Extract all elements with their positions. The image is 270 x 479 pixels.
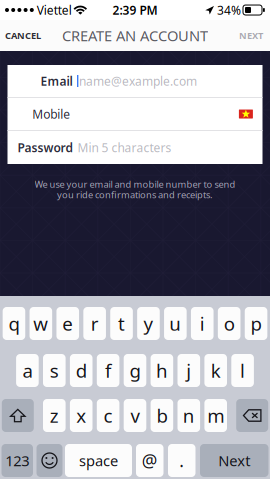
button[interactable]: z xyxy=(43,399,66,432)
button[interactable]: v xyxy=(124,399,146,432)
staticText: e xyxy=(62,311,73,336)
button[interactable]: Email xyxy=(7,65,262,97)
button[interactable]: t xyxy=(110,307,133,340)
staticText: Mobile xyxy=(32,106,70,122)
staticText: c xyxy=(104,403,113,428)
staticText: k xyxy=(211,358,221,383)
staticText: r xyxy=(91,311,99,336)
staticText: m xyxy=(207,403,224,428)
staticText: . xyxy=(179,449,184,472)
staticText: CREATE AN ACCOUNT xyxy=(62,26,208,45)
button[interactable]: k xyxy=(204,354,227,387)
button[interactable]: m xyxy=(204,399,227,432)
button[interactable]: p xyxy=(245,307,267,340)
staticText: s xyxy=(50,358,59,383)
button[interactable]: . xyxy=(168,444,195,477)
staticText: l xyxy=(240,358,245,383)
staticText: you ride confirmations and receipts. xyxy=(57,188,213,201)
staticText: o xyxy=(224,311,235,336)
button[interactable]: CANCEL xyxy=(0,20,46,51)
button[interactable]: Password xyxy=(7,131,262,164)
button[interactable]: i xyxy=(191,307,214,340)
staticText: z xyxy=(50,403,59,428)
button[interactable]: @ xyxy=(136,444,163,477)
staticText: name@example.com xyxy=(79,73,197,89)
button[interactable]: Mobile xyxy=(7,98,262,130)
staticText: b xyxy=(156,403,167,428)
staticText: 34% xyxy=(214,2,241,18)
button[interactable]: l xyxy=(231,354,254,387)
button[interactable]: c xyxy=(97,399,119,432)
button[interactable]: a xyxy=(16,354,39,387)
staticText: 2:39 PM xyxy=(112,2,157,18)
button[interactable]: 123 xyxy=(1,444,33,477)
staticText: w xyxy=(33,311,48,336)
staticText: h xyxy=(156,358,168,383)
staticText: x xyxy=(76,403,86,428)
staticText: v xyxy=(130,403,139,428)
button[interactable]: x xyxy=(70,399,92,432)
button[interactable]: Shift xyxy=(2,399,34,432)
staticText: y xyxy=(143,311,153,336)
button[interactable]: q xyxy=(3,307,25,340)
button[interactable]: j xyxy=(177,354,200,387)
button[interactable]: r xyxy=(83,307,106,340)
button[interactable]: s xyxy=(43,354,66,387)
button[interactable]: n xyxy=(177,399,200,432)
button[interactable]: NEXT xyxy=(232,20,270,51)
staticText: u xyxy=(169,311,181,336)
button[interactable]: w xyxy=(30,307,52,340)
staticText: Email xyxy=(40,73,72,89)
staticText: Password xyxy=(17,139,73,155)
staticText: space xyxy=(79,451,118,470)
staticText: Min 5 characters xyxy=(77,139,171,155)
button[interactable]: Backspace xyxy=(236,399,268,432)
staticText: a xyxy=(22,358,32,383)
staticText: @ xyxy=(142,449,158,472)
button[interactable]: h xyxy=(151,354,173,387)
button[interactable]: d xyxy=(70,354,92,387)
button[interactable]: o xyxy=(218,307,240,340)
staticText: f xyxy=(105,358,111,383)
button[interactable]: Next xyxy=(200,444,268,477)
button[interactable]: g xyxy=(124,354,146,387)
button[interactable]: Emoji xyxy=(36,444,62,477)
staticText: p xyxy=(251,311,262,336)
staticText: NEXT xyxy=(239,29,263,42)
staticText: g xyxy=(129,358,140,383)
staticText: 123 xyxy=(5,451,29,470)
staticText: d xyxy=(76,358,87,383)
button[interactable]: e xyxy=(56,307,79,340)
staticText: Viettel xyxy=(34,2,72,18)
button[interactable]: b xyxy=(151,399,173,432)
button[interactable]: y xyxy=(137,307,160,340)
button[interactable]: f xyxy=(97,354,119,387)
staticText: i xyxy=(200,311,205,336)
staticText: Next xyxy=(218,451,250,470)
staticText: t xyxy=(118,311,125,336)
staticText: q xyxy=(8,311,19,336)
staticText: j xyxy=(186,358,191,383)
button[interactable]: u xyxy=(164,307,187,340)
staticText: n xyxy=(183,403,195,428)
button[interactable]: space xyxy=(65,444,132,477)
staticText: CANCEL xyxy=(5,29,41,42)
staticText: We use your email and mobile number to s… xyxy=(34,178,235,190)
